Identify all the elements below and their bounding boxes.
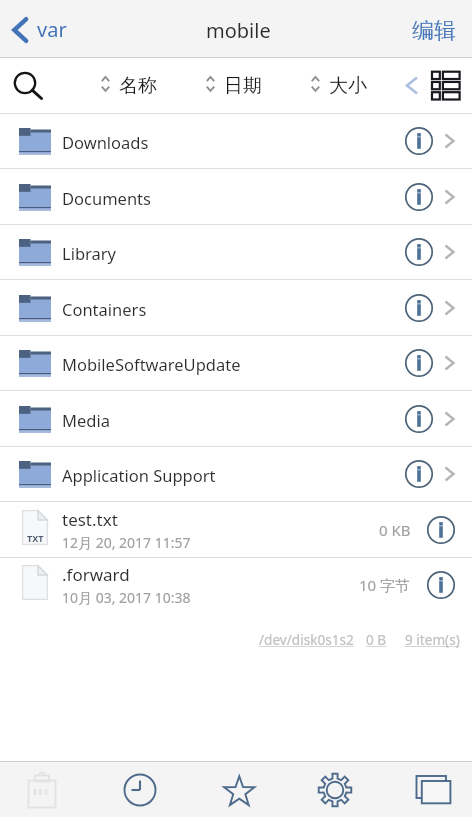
- button[interactable]: 9 item(s): [405, 630, 460, 649]
- button[interactable]: Settings: [311, 763, 359, 817]
- button[interactable]: Info: [404, 293, 434, 323]
- staticText: TXT: [27, 532, 44, 544]
- staticText: Documents: [62, 187, 151, 209]
- button[interactable]: Recent: [116, 763, 164, 817]
- button[interactable]: Favorites: [213, 763, 261, 817]
- button[interactable]: Info: [404, 459, 434, 489]
- button[interactable]: Info: [404, 182, 434, 212]
- staticText: mobile: [206, 17, 271, 44]
- button[interactable]: .forward: [0, 557, 472, 613]
- button[interactable]: Library: [0, 224, 472, 280]
- button[interactable]: Info: [426, 570, 456, 600]
- staticText: Downloads: [62, 131, 149, 153]
- button[interactable]: Media: [0, 391, 472, 447]
- staticText: 0 KB: [379, 520, 411, 540]
- button[interactable]: Collapse: [403, 72, 423, 98]
- button[interactable]: Clipboard: [18, 763, 66, 817]
- button[interactable]: Info: [404, 126, 434, 156]
- button[interactable]: MobileSoftwareUpdate: [0, 335, 472, 391]
- button[interactable]: Containers: [0, 280, 472, 336]
- staticText: 10月 03, 2017 10:38: [62, 588, 191, 607]
- staticText: 编辑: [412, 17, 456, 45]
- button[interactable]: 大小: [311, 70, 367, 98]
- staticText: test.txt: [62, 508, 118, 531]
- staticText: MobileSoftwareUpdate: [62, 353, 241, 375]
- staticText: Application Support: [62, 464, 216, 486]
- button[interactable]: Documents: [0, 169, 472, 225]
- staticText: 12月 20, 2017 11:57: [62, 533, 191, 552]
- button[interactable]: var: [0, 16, 77, 43]
- staticText: Media: [62, 409, 110, 431]
- button[interactable]: Tabs: [409, 763, 457, 817]
- button[interactable]: Search: [9, 66, 43, 100]
- button[interactable]: Info: [404, 237, 434, 267]
- button[interactable]: 编辑: [396, 15, 472, 43]
- button[interactable]: Downloads: [0, 113, 472, 169]
- staticText: Library: [62, 242, 117, 264]
- staticText: 日期: [224, 74, 262, 98]
- button[interactable]: List view: [430, 69, 462, 103]
- button[interactable]: Info: [404, 348, 434, 378]
- staticText: Containers: [62, 298, 147, 320]
- button[interactable]: /dev/disk0s1s2: [259, 630, 354, 649]
- button[interactable]: 名称: [101, 70, 157, 98]
- staticText: 名称: [119, 74, 157, 98]
- staticText: var: [37, 16, 67, 43]
- button[interactable]: Application Support: [0, 446, 472, 502]
- button[interactable]: 日期: [206, 70, 262, 98]
- button[interactable]: 0 B: [366, 630, 387, 649]
- button[interactable]: Info: [426, 515, 456, 545]
- staticText: 10 字节: [359, 575, 411, 595]
- button[interactable]: TXT: [0, 502, 472, 558]
- button[interactable]: Info: [404, 404, 434, 434]
- staticText: .forward: [62, 563, 130, 586]
- staticText: 大小: [329, 74, 367, 98]
